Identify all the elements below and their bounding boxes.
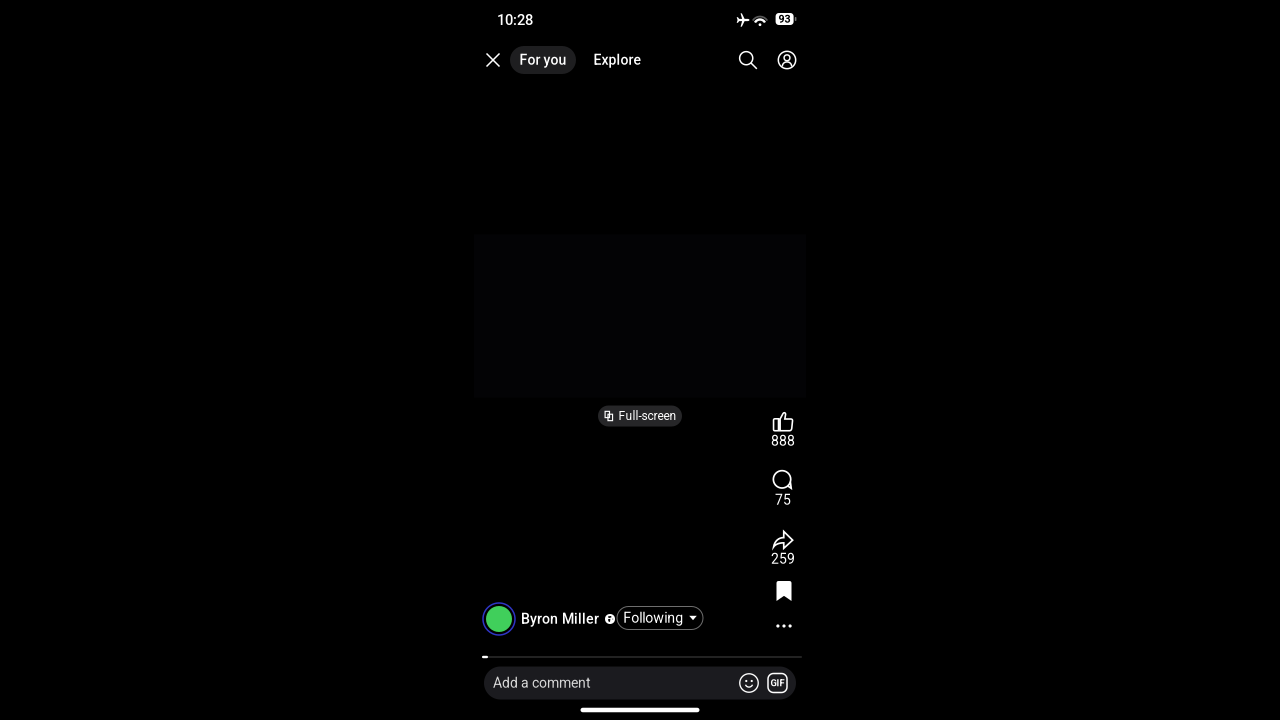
button[interactable]: Close: [476, 43, 510, 77]
button[interactable]: Search: [732, 44, 764, 76]
staticText: For you: [519, 52, 566, 68]
staticText: Full-screen: [618, 409, 676, 423]
button[interactable]: 888: [760, 410, 806, 450]
button[interactable]: Save: [762, 575, 806, 607]
staticText: 93: [779, 13, 791, 25]
button[interactable]: 259: [760, 528, 806, 568]
staticText: Add a comment: [493, 675, 591, 691]
button[interactable]: For you: [510, 46, 576, 74]
staticText: Explore: [593, 52, 640, 68]
staticText: 75: [775, 492, 791, 508]
button[interactable]: Full-screen: [598, 405, 682, 426]
staticText: Following: [623, 610, 683, 626]
staticText: 259: [771, 551, 795, 567]
button[interactable]: Byron Miller: [483, 602, 615, 636]
button[interactable]: Explore: [586, 46, 648, 74]
staticText: 888: [771, 433, 795, 449]
button[interactable]: Following: [617, 606, 703, 629]
staticText: 10:28: [497, 11, 533, 29]
button[interactable]: More options: [762, 613, 806, 639]
button[interactable]: Account: [771, 44, 803, 76]
button[interactable]: 75: [760, 469, 806, 509]
button[interactable]: Add a comment: [484, 666, 796, 699]
staticText: Byron Miller: [521, 611, 599, 627]
staticText: GIF: [770, 677, 784, 688]
